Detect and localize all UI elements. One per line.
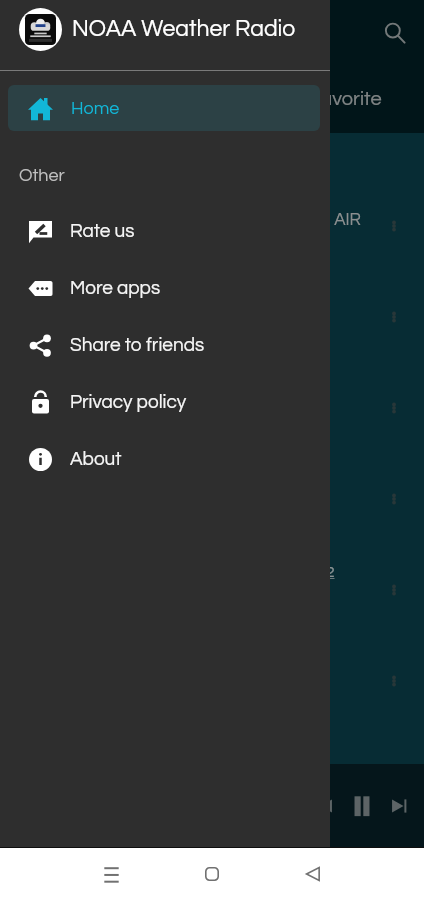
button[interactable]: Next [378,784,422,828]
button[interactable]: WXM34 Manassas VA [0,453,424,544]
button[interactable]: Search [373,11,417,55]
button[interactable]: More options [375,389,413,427]
button[interactable]: WXL58 Baltimore MD [0,271,424,362]
button[interactable]: KHB36 Washington DC [0,544,424,635]
button[interactable]: Privacy policy [0,373,330,430]
button[interactable]: Recent apps [86,849,136,899]
staticText: Favorite [309,89,382,110]
button[interactable]: Pause [340,784,384,828]
staticText: NOAA Weather Radio [72,17,296,41]
staticText: More apps [70,278,161,298]
button[interactable]: More apps [0,259,330,316]
button[interactable]: Home [8,85,320,131]
staticText: NOAA Weather Radio [126,23,321,44]
button[interactable]: Rate us [0,202,330,259]
staticText: KIG77 Richmond VA [18,393,171,411]
button[interactable]: Home [63,66,203,133]
staticText: About [70,449,122,469]
staticText: Privacy policy [70,392,187,412]
button[interactable]: More options [375,298,413,336]
button[interactable]: Previous [302,784,346,828]
button[interactable]: More options [375,207,413,245]
button[interactable]: More options [375,662,413,700]
staticText: Home [106,89,160,110]
button[interactable]: KEC61 Washington DC 162.400 MHz - ON AIR [0,180,424,271]
button[interactable]: Home [187,849,237,899]
button[interactable]: About [0,430,330,487]
button[interactable]: Share to friends [0,316,330,373]
button[interactable]: Back [288,849,338,899]
button[interactable]: WNG64 Annapolis MD [0,635,424,726]
button[interactable]: KIG77 Richmond VA [0,362,424,453]
button[interactable]: More options [375,571,413,609]
staticText: Home [71,99,120,118]
staticText: Other [19,166,65,185]
button[interactable]: Favorite [275,66,415,133]
staticText: Rate us [70,221,135,241]
staticText: KEC61 Washington DC 162.400 MHz - ON AIR [18,211,361,229]
button[interactable]: More options [375,480,413,518]
staticText: https://www.weather.gov/nwr/countycovera… [18,565,335,580]
staticText: Share to friends [70,335,205,355]
